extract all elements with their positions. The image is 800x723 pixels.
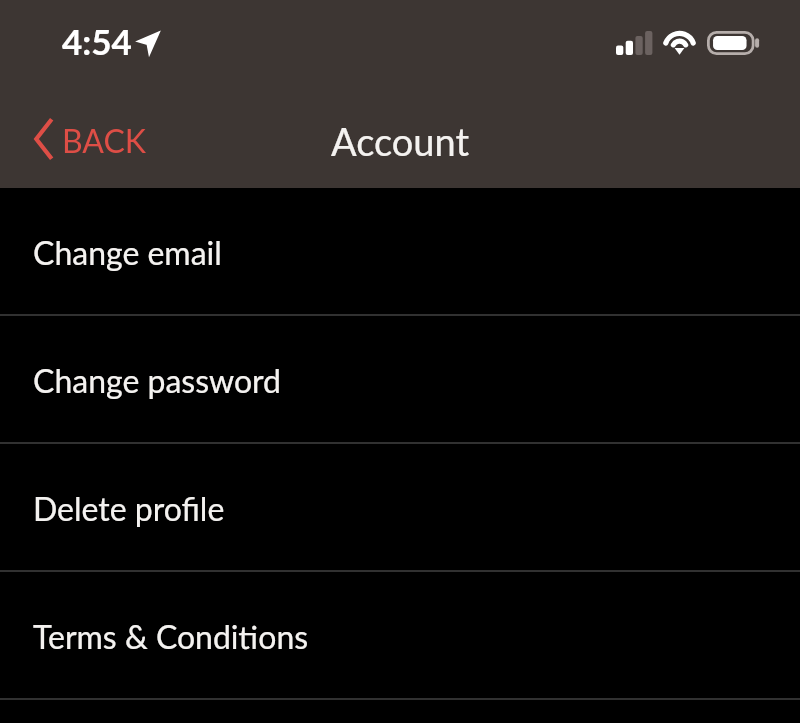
staticText: BACK xyxy=(62,121,147,159)
button[interactable]: Change email xyxy=(0,188,800,316)
staticText: 4:54 xyxy=(62,20,132,62)
staticText: Change password xyxy=(33,361,282,399)
button[interactable]: Terms & Conditions xyxy=(0,572,800,700)
staticText: Change email xyxy=(33,233,222,271)
staticText: Delete profile xyxy=(33,489,225,527)
button[interactable]: Change password xyxy=(0,316,800,444)
button[interactable]: Delete profile xyxy=(0,444,800,572)
staticText: Account xyxy=(331,118,470,164)
staticText: Terms & Conditions xyxy=(33,617,309,655)
button[interactable]: Back xyxy=(34,118,147,160)
